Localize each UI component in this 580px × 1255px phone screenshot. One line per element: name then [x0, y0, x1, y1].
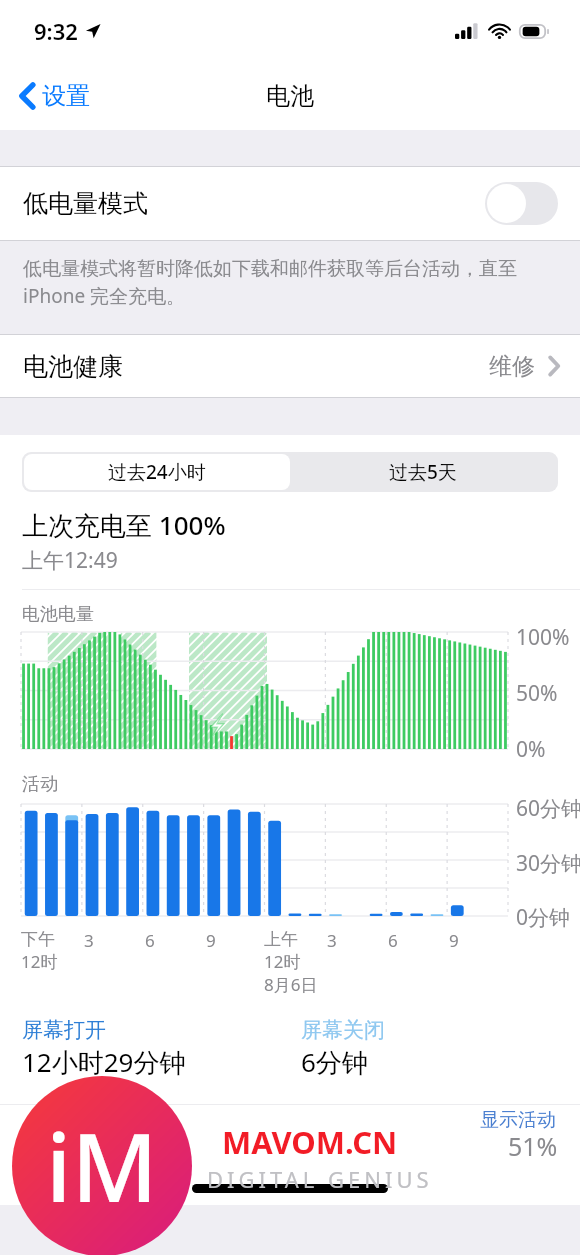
staticText: 6分钟 [301, 1044, 368, 1080]
staticText: 低电量模式将暂时降低如下载和邮件获取等后台活动，直至 iPhone 完全充电。 [23, 255, 554, 309]
staticText: 51% [508, 1129, 558, 1163]
staticText: 9 [206, 929, 216, 952]
staticText: 12时 [264, 950, 301, 973]
staticText: 6 [388, 929, 398, 952]
button[interactable]: 显示活动 [480, 1108, 556, 1132]
button[interactable]: 低电量模式开关 [485, 182, 558, 225]
staticText: 12小时29分钟 [22, 1044, 186, 1080]
staticText: 电池 [266, 81, 314, 111]
staticText: 屏幕打开 [22, 1017, 106, 1043]
staticText: 8月6日 [264, 973, 318, 996]
button[interactable]: 过去24小时 [24, 454, 290, 490]
staticText: 电池健康 [23, 351, 123, 382]
staticText: 9 [449, 929, 459, 952]
staticText: 下午 [21, 929, 55, 950]
button[interactable]: 电池健康 [0, 335, 580, 397]
staticText: 活动 [22, 773, 58, 796]
staticText: 60分钟 [516, 794, 580, 823]
staticText: 6 [145, 929, 155, 952]
staticText: 0% [516, 735, 546, 764]
button[interactable]: 51% [22, 1119, 558, 1173]
staticText: 维修 [489, 352, 535, 381]
staticText: 上午 [264, 929, 298, 950]
staticText: 低电量模式 [23, 188, 148, 219]
staticText: 上次充电至 100% [22, 507, 226, 543]
staticText: 12时 [21, 950, 58, 973]
staticText: 3 [84, 929, 94, 952]
staticText: 过去24小时 [108, 459, 206, 485]
staticText: 过去5天 [389, 459, 457, 485]
staticText: 上午12:49 [22, 546, 118, 575]
staticText: DIGITAL GENIUS [207, 1164, 433, 1194]
button[interactable]: 设置 [14, 73, 96, 119]
staticText: 9:32 [34, 16, 78, 46]
staticText: 50% [516, 679, 558, 708]
staticText: 屏幕关闭 [301, 1017, 385, 1043]
staticText: 100% [516, 623, 570, 652]
staticText: iM [46, 1102, 158, 1230]
staticText: MAVOM.CN [222, 1121, 398, 1163]
button[interactable]: 过去5天 [290, 454, 556, 490]
staticText: 设置 [42, 81, 90, 111]
button[interactable]: 低电量模式 [0, 167, 580, 240]
staticText: 显示活动 [480, 1108, 556, 1132]
staticText: 0分钟 [516, 903, 571, 932]
staticText: 电池电量 [22, 603, 94, 626]
staticText: 30分钟 [516, 849, 580, 878]
staticText: 3 [327, 929, 337, 952]
